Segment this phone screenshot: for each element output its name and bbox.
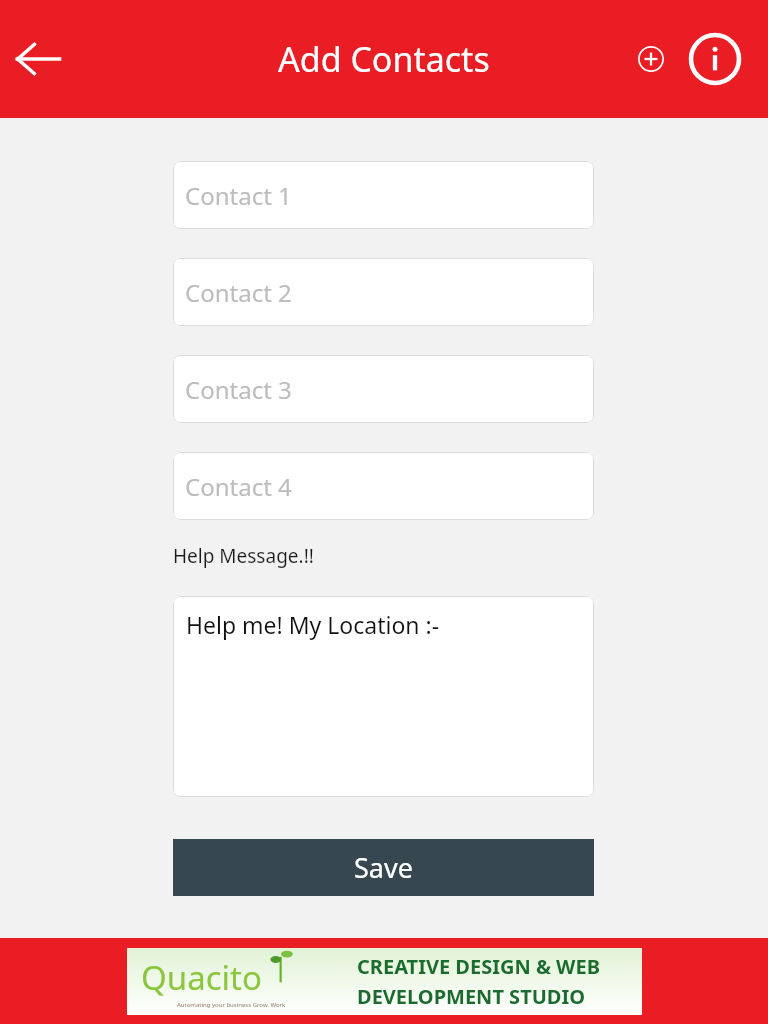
staticText: Contact 2 xyxy=(185,276,292,309)
staticText: Save xyxy=(354,849,413,886)
staticText: Contact 1 xyxy=(185,179,292,212)
staticText: Contact 4 xyxy=(185,470,292,503)
button[interactable]: Help me! My Location :- xyxy=(173,596,594,797)
button[interactable]: Back xyxy=(6,27,70,91)
button[interactable]: Contact 2 xyxy=(173,258,594,326)
staticText: Contact 3 xyxy=(185,373,292,406)
staticText: Automating your business Grow. Work xyxy=(177,1001,286,1009)
button[interactable]: Contact 1 xyxy=(173,161,594,229)
staticText: DEVELOPMENT STUDIO xyxy=(357,983,586,1010)
staticText: Add Contacts xyxy=(278,36,490,82)
button[interactable]: Contact 4 xyxy=(173,452,594,520)
button[interactable]: Add contact xyxy=(628,36,674,82)
button[interactable]: Information xyxy=(686,30,744,88)
button[interactable]: Advertisement xyxy=(127,948,642,1015)
staticText: Help Message.!! xyxy=(173,543,314,569)
staticText: Help me! My Location :- xyxy=(186,609,440,640)
button[interactable]: Contact 3 xyxy=(173,355,594,423)
staticText: CREATIVE DESIGN & WEB xyxy=(357,953,600,980)
staticText: Quacito xyxy=(141,955,262,1000)
button[interactable]: Save xyxy=(173,839,594,896)
